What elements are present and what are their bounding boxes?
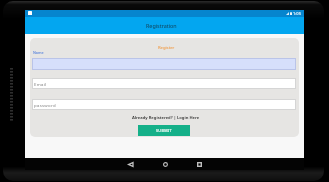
staticText: Registration (146, 22, 177, 29)
button[interactable]: Recents (193, 158, 205, 170)
staticText: Email (34, 81, 47, 87)
button[interactable]: Email (32, 78, 296, 89)
button[interactable] (32, 58, 296, 70)
staticText: 1:05 (293, 11, 301, 16)
staticText: Register (158, 45, 175, 51)
staticText: password (34, 102, 56, 108)
button[interactable]: password (32, 99, 296, 110)
button[interactable]: Back (124, 158, 136, 170)
button[interactable]: Home (159, 158, 171, 170)
staticText: Name (33, 50, 44, 55)
button[interactable]: SUBMIT (138, 125, 190, 136)
button[interactable]: Already Registered? | Login Here (132, 115, 200, 121)
staticText: SUBMIT (156, 128, 172, 133)
